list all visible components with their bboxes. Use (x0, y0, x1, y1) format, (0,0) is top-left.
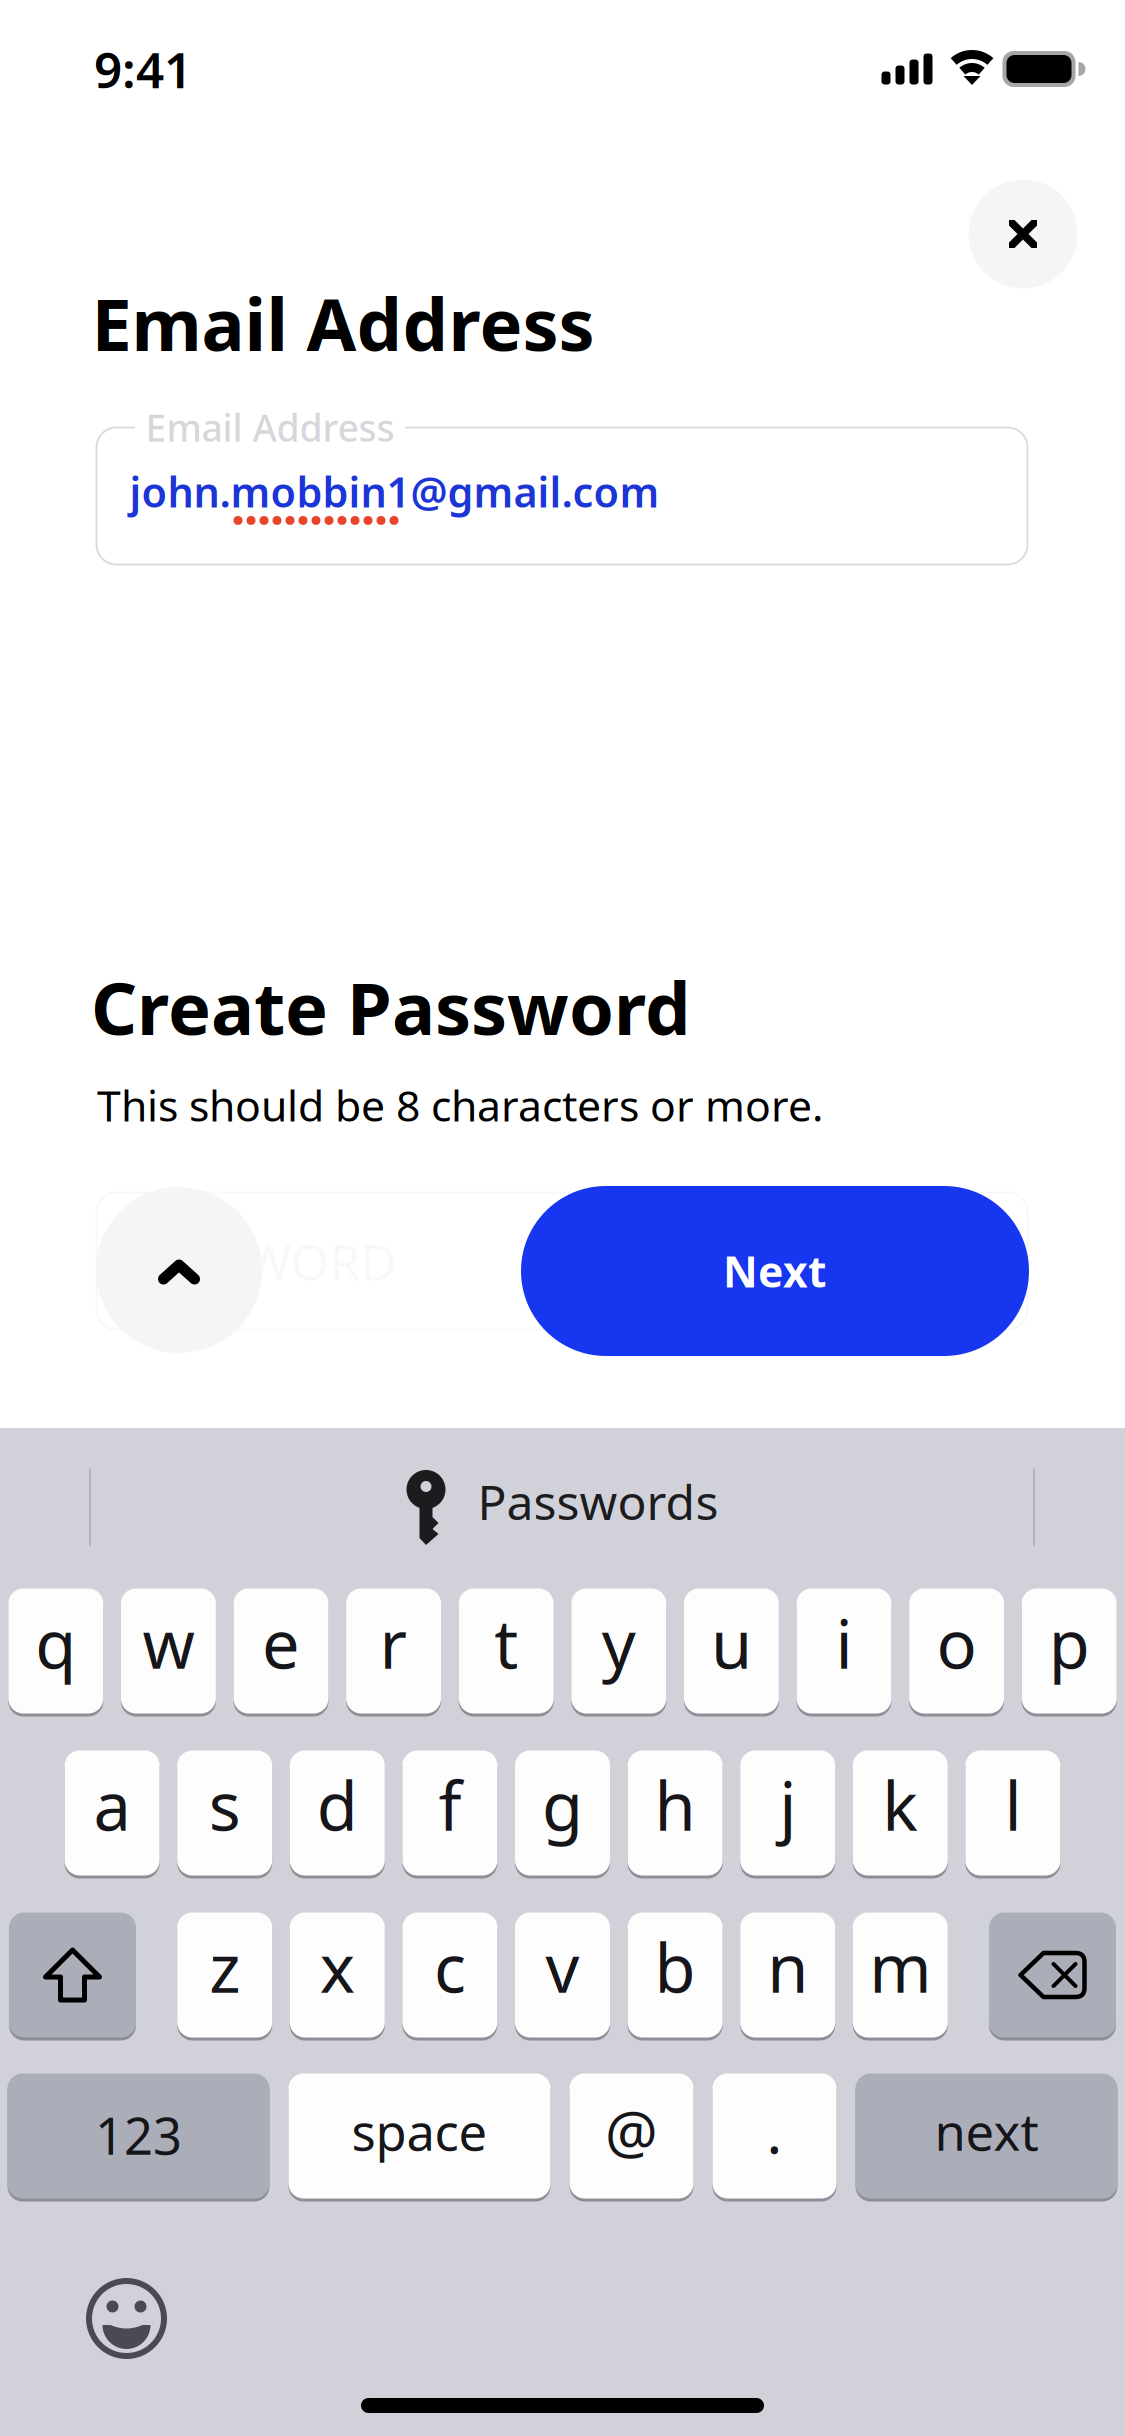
staticText: Create Password (91, 959, 691, 1055)
button[interactable]: space (288, 2072, 550, 2200)
button[interactable]: Emoji keyboard (86, 2278, 167, 2359)
staticText: k (882, 1761, 918, 1849)
staticText: t (494, 1599, 518, 1687)
staticText: next (934, 2097, 1038, 2165)
staticText: u (711, 1599, 752, 1687)
button[interactable]: t (459, 1587, 554, 1715)
staticText: z (209, 1923, 240, 2011)
button[interactable]: next (855, 2072, 1117, 2200)
button[interactable]: f (402, 1749, 497, 1877)
staticText: w (142, 1599, 194, 1687)
button[interactable]: d (290, 1749, 385, 1877)
staticText: f (438, 1761, 461, 1849)
button[interactable]: @ (569, 2072, 693, 2200)
button[interactable]: g (515, 1749, 610, 1877)
staticText: 123 (95, 2101, 182, 2169)
staticText: Email Address (145, 402, 394, 452)
staticText: Email Address (91, 275, 594, 371)
button[interactable]: Show password suggestions (96, 1187, 262, 1353)
button[interactable]: a (65, 1749, 160, 1877)
button[interactable]: y (571, 1587, 666, 1715)
button[interactable]: u (684, 1587, 779, 1715)
staticText: . (766, 2092, 782, 2170)
staticText: john.mobbin1@gmail.com (129, 464, 659, 519)
staticText: a (94, 1761, 131, 1849)
button[interactable]: z (177, 1911, 272, 2039)
staticText: o (937, 1599, 977, 1687)
button[interactable]: c (402, 1911, 497, 2039)
staticText: p (1049, 1599, 1090, 1687)
staticText: This should be 8 characters or more. (97, 1077, 823, 1133)
staticText: i (835, 1599, 852, 1687)
staticText: q (35, 1599, 76, 1687)
staticText: @ (605, 2092, 658, 2170)
button[interactable]: m (853, 1911, 948, 2039)
button[interactable]: n (740, 1911, 835, 2039)
button[interactable]: Close (968, 179, 1077, 288)
button[interactable]: q (8, 1587, 103, 1715)
staticText: e (262, 1599, 300, 1687)
button[interactable]: . (712, 2072, 836, 2200)
staticText: s (209, 1761, 241, 1849)
staticText: Next (723, 1243, 827, 1299)
staticText: b (655, 1923, 696, 2011)
staticText: j (779, 1761, 796, 1849)
button[interactable]: b (628, 1911, 723, 2039)
button[interactable]: Delete (989, 1911, 1116, 2039)
button[interactable]: l (965, 1749, 1060, 1877)
staticText: y (602, 1599, 636, 1687)
button[interactable]: s (177, 1749, 272, 1877)
button[interactable]: k (853, 1749, 948, 1877)
button[interactable]: e (233, 1587, 328, 1715)
staticText: 9:41 (94, 36, 192, 102)
staticText: PASSWORD (132, 1228, 396, 1294)
staticText: x (320, 1923, 355, 2011)
staticText: h (655, 1761, 696, 1849)
staticText: g (542, 1761, 583, 1849)
staticText: d (317, 1761, 358, 1849)
button[interactable]: r (346, 1587, 441, 1715)
button[interactable]: w (121, 1587, 216, 1715)
button[interactable]: Passwords (382, 1447, 742, 1567)
staticText: n (767, 1923, 808, 2011)
button[interactable]: x (290, 1911, 385, 2039)
staticText: l (1004, 1761, 1021, 1849)
button[interactable]: v (515, 1911, 610, 2039)
staticText: v (545, 1923, 579, 2011)
staticText: c (434, 1923, 466, 2011)
staticText: space (351, 2097, 487, 2165)
staticText: m (869, 1923, 931, 2011)
button[interactable]: Next (521, 1186, 1029, 1356)
button[interactable]: i (796, 1587, 891, 1715)
button[interactable]: j (740, 1749, 835, 1877)
button[interactable]: 123 (7, 2072, 269, 2200)
staticText: Passwords (477, 1470, 718, 1533)
button[interactable]: p (1022, 1587, 1117, 1715)
staticText: r (380, 1599, 408, 1687)
button[interactable]: Shift (9, 1911, 136, 2039)
button[interactable]: h (628, 1749, 723, 1877)
button[interactable]: o (909, 1587, 1004, 1715)
